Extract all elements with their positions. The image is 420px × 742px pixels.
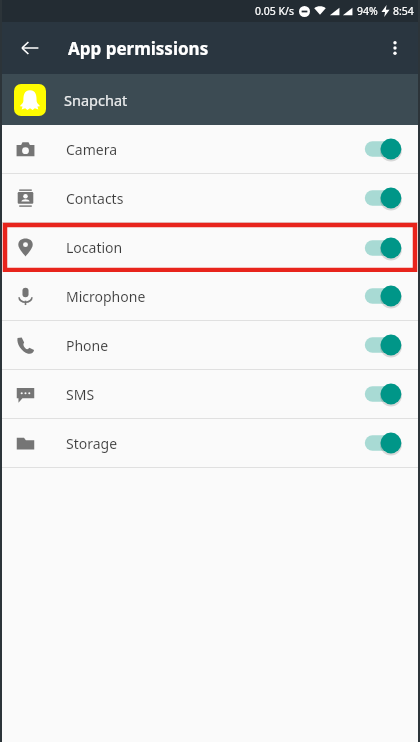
button[interactable]: Snapchat xyxy=(0,74,420,125)
button[interactable]: Microphone xyxy=(0,272,420,320)
button[interactable]: Storage xyxy=(0,419,420,467)
staticText: 8:54 xyxy=(393,4,414,18)
staticText: Contacts xyxy=(66,189,124,208)
button[interactable]: Toggle permission xyxy=(364,185,406,211)
button[interactable]: Toggle permission xyxy=(364,381,406,407)
button[interactable]: Toggle permission xyxy=(364,332,406,358)
button[interactable]: Location xyxy=(0,223,420,272)
button[interactable]: Toggle permission xyxy=(364,430,406,456)
staticText: Location xyxy=(66,238,123,257)
button[interactable]: Toggle permission xyxy=(364,235,406,261)
button[interactable]: Toggle permission xyxy=(364,136,406,162)
staticText: Microphone xyxy=(66,287,146,306)
staticText: Snapchat xyxy=(64,90,128,110)
button[interactable]: SMS xyxy=(0,370,420,418)
staticText: Camera xyxy=(66,140,118,159)
button[interactable]: Toggle permission xyxy=(364,283,406,309)
staticText: 0.05 K/s xyxy=(255,4,294,18)
button[interactable]: More options xyxy=(375,28,415,68)
staticText: Phone xyxy=(66,336,109,355)
staticText: 94% xyxy=(357,4,378,18)
staticText: SMS xyxy=(66,385,95,404)
button[interactable]: Phone xyxy=(0,321,420,369)
staticText: Storage xyxy=(66,434,118,453)
button[interactable]: Contacts xyxy=(0,174,420,222)
staticText: App permissions xyxy=(68,37,209,60)
button[interactable]: Back xyxy=(10,28,50,68)
button[interactable]: Camera xyxy=(0,125,420,173)
